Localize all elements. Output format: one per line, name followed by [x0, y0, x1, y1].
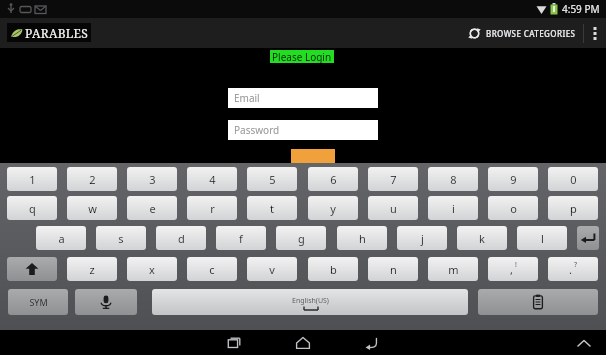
- button[interactable]: t: [247, 196, 297, 220]
- staticText: y: [330, 201, 336, 216]
- staticText: 4: [209, 172, 216, 187]
- button[interactable]: Back: [358, 330, 384, 355]
- button[interactable]: w: [67, 196, 117, 220]
- staticText: ,: [510, 262, 513, 277]
- button[interactable]: 8: [428, 167, 478, 191]
- staticText: 1: [29, 172, 36, 187]
- staticText: r: [210, 201, 215, 216]
- staticText: o: [510, 201, 517, 216]
- staticText: f: [239, 231, 243, 246]
- button[interactable]: Password: [228, 120, 378, 140]
- button[interactable]: b: [308, 257, 358, 281]
- staticText: SYM: [29, 296, 48, 308]
- staticText: j: [421, 231, 424, 246]
- button[interactable]: .: [548, 257, 598, 281]
- button[interactable]: 3: [127, 167, 177, 191]
- staticText: Password: [234, 123, 280, 137]
- staticText: 4:59 PM: [562, 2, 600, 16]
- staticText: c: [209, 262, 215, 277]
- button[interactable]: y: [308, 196, 358, 220]
- button[interactable]: m: [428, 257, 478, 281]
- button[interactable]: c: [187, 257, 237, 281]
- staticText: p: [570, 201, 577, 216]
- button[interactable]: g: [276, 226, 326, 250]
- button[interactable]: s: [96, 226, 146, 250]
- button[interactable]: f: [216, 226, 266, 250]
- button[interactable]: i: [428, 196, 478, 220]
- button[interactable]: Clipboard: [478, 289, 598, 315]
- button[interactable]: p: [548, 196, 598, 220]
- button[interactable]: Recent apps: [222, 330, 248, 355]
- staticText: 2: [89, 172, 96, 187]
- button[interactable]: Shift: [7, 257, 57, 281]
- staticText: b: [330, 262, 337, 277]
- staticText: u: [390, 201, 397, 216]
- button[interactable]: 6: [308, 167, 358, 191]
- staticText: 7: [390, 172, 397, 187]
- staticText: q: [29, 201, 36, 216]
- button[interactable]: More options: [584, 18, 606, 48]
- staticText: Email: [234, 91, 260, 105]
- staticText: s: [118, 231, 124, 246]
- button[interactable]: z: [67, 257, 117, 281]
- staticText: 0: [570, 172, 577, 187]
- staticText: 6: [330, 172, 337, 187]
- staticText: k: [479, 231, 485, 246]
- staticText: l: [541, 231, 544, 246]
- button[interactable]: l: [517, 226, 567, 250]
- staticText: 9: [510, 172, 517, 187]
- button[interactable]: Space: [152, 289, 468, 315]
- staticText: English(US): [292, 296, 329, 306]
- staticText: Please Login: [272, 50, 332, 63]
- button[interactable]: v: [247, 257, 297, 281]
- staticText: 5: [269, 172, 276, 187]
- staticText: x: [149, 262, 155, 277]
- button[interactable]: r: [187, 196, 237, 220]
- staticText: e: [149, 201, 156, 216]
- button[interactable]: 9: [488, 167, 538, 191]
- staticText: ?: [574, 260, 578, 270]
- button[interactable]: 7: [368, 167, 418, 191]
- staticText: m: [448, 262, 459, 277]
- staticText: v: [269, 262, 275, 277]
- button[interactable]: ,: [488, 257, 538, 281]
- staticText: g: [298, 231, 305, 246]
- button[interactable]: j: [397, 226, 447, 250]
- button[interactable]: d: [156, 226, 206, 250]
- staticText: i: [452, 201, 455, 216]
- staticText: a: [58, 231, 65, 246]
- button[interactable]: x: [127, 257, 177, 281]
- button[interactable]: Hide keyboard: [572, 331, 596, 355]
- button[interactable]: e: [127, 196, 177, 220]
- button[interactable]: Voice input: [75, 289, 137, 315]
- staticText: h: [359, 231, 366, 246]
- staticText: t: [270, 201, 274, 216]
- button[interactable]: n: [368, 257, 418, 281]
- button[interactable]: Home: [290, 330, 316, 355]
- button[interactable]: 5: [247, 167, 297, 191]
- staticText: z: [89, 262, 95, 277]
- button[interactable]: BROWSE CATEGORIES: [461, 18, 583, 48]
- button[interactable]: 0: [548, 167, 598, 191]
- button[interactable]: SYM: [8, 289, 68, 315]
- staticText: BROWSE CATEGORIES: [486, 28, 576, 39]
- staticText: 8: [450, 172, 457, 187]
- staticText: d: [178, 231, 185, 246]
- staticText: PARABLES: [25, 25, 89, 41]
- staticText: !: [515, 260, 517, 270]
- button[interactable]: Email: [228, 88, 378, 108]
- button[interactable]: Enter: [577, 226, 599, 250]
- button[interactable]: k: [457, 226, 507, 250]
- button[interactable]: o: [488, 196, 538, 220]
- button[interactable]: 1: [7, 167, 57, 191]
- button[interactable]: u: [368, 196, 418, 220]
- button[interactable]: Parables home: [7, 23, 91, 42]
- button[interactable]: 4: [187, 167, 237, 191]
- staticText: .: [569, 262, 572, 277]
- button[interactable]: q: [7, 196, 57, 220]
- button[interactable]: 2: [67, 167, 117, 191]
- button[interactable]: h: [337, 226, 387, 250]
- staticText: n: [390, 262, 397, 277]
- button[interactable]: a: [36, 226, 86, 250]
